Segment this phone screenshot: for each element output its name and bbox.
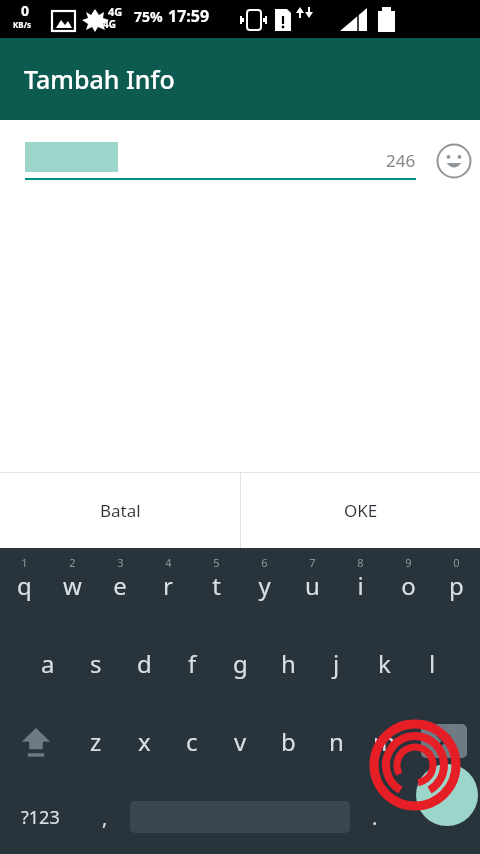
staticText: c [186, 725, 198, 758]
button[interactable]: Batal [0, 473, 240, 548]
staticText: s [90, 647, 102, 680]
button[interactable]: a [24, 624, 72, 702]
staticText: r [163, 569, 173, 602]
staticText: 17:59 [168, 5, 210, 27]
staticText: b [281, 725, 296, 758]
staticText: 75% [134, 7, 163, 26]
staticText: ?123 [21, 805, 60, 830]
button[interactable]: Backspace [408, 702, 480, 780]
staticText: y [258, 569, 271, 602]
staticText: p [449, 569, 464, 602]
button[interactable]: n [312, 702, 360, 780]
button[interactable]: b [264, 702, 312, 780]
staticText: u [305, 569, 320, 602]
staticText: g [233, 647, 248, 680]
staticText: o [401, 569, 416, 602]
button[interactable]: Space [130, 780, 350, 854]
staticText: m [373, 725, 396, 758]
staticText: 4G [108, 4, 123, 19]
button[interactable]: h [264, 624, 312, 702]
button[interactable]: x [120, 702, 168, 780]
staticText: i [357, 569, 364, 602]
button[interactable]: 2 [48, 548, 96, 624]
button[interactable]: m [360, 702, 408, 780]
button[interactable]: Enter [400, 780, 480, 854]
button[interactable]: k [360, 624, 408, 702]
staticText: h [281, 647, 296, 680]
staticText: j [333, 647, 340, 680]
staticText: , [102, 804, 108, 831]
staticText: e [113, 569, 127, 602]
staticText: 0 [21, 1, 30, 20]
button[interactable]: f [168, 624, 216, 702]
staticText: 7 [309, 555, 316, 570]
staticText: k [378, 647, 391, 680]
staticText: 0 [453, 555, 460, 570]
staticText: t [212, 569, 221, 602]
staticText: 9 [405, 555, 412, 570]
staticText: Batal [100, 499, 141, 522]
button[interactable]: 8 [336, 548, 384, 624]
staticText: z [90, 725, 102, 758]
button[interactable]: , [80, 780, 130, 854]
button[interactable]: j [312, 624, 360, 702]
staticText: q [17, 569, 32, 602]
staticText: 6 [261, 555, 268, 570]
button[interactable]: 6 [240, 548, 288, 624]
staticText: x [138, 725, 151, 758]
button[interactable]: 9 [384, 548, 432, 624]
staticText: w [63, 569, 82, 602]
staticText: 3 [117, 555, 124, 570]
button[interactable]: 1 [0, 548, 48, 624]
button[interactable]: s [72, 624, 120, 702]
staticText: . [372, 804, 378, 831]
button[interactable]: OKE [241, 473, 480, 548]
button[interactable]: z [72, 702, 120, 780]
staticText: v [234, 725, 247, 758]
button[interactable]: g [216, 624, 264, 702]
staticText: 4G [103, 17, 116, 31]
button[interactable]: 5 [192, 548, 240, 624]
staticText: n [329, 725, 344, 758]
staticText: d [137, 647, 152, 680]
button[interactable]: Emoji [428, 135, 480, 187]
staticText: 5 [213, 555, 220, 570]
button[interactable]: 246 [25, 142, 416, 180]
staticText: l [429, 647, 436, 680]
button[interactable]: v [216, 702, 264, 780]
staticText: 1 [21, 555, 28, 570]
staticText: 4 [165, 555, 172, 570]
button[interactable]: 3 [96, 548, 144, 624]
button[interactable]: Shift [0, 702, 72, 780]
button[interactable]: l [408, 624, 456, 702]
staticText: 2 [69, 555, 76, 570]
button[interactable]: c [168, 702, 216, 780]
staticText: a [41, 647, 55, 680]
staticText: OKE [344, 499, 378, 522]
button[interactable]: . [350, 780, 400, 854]
staticText: 246 [386, 149, 416, 172]
staticText: KB/s [13, 19, 31, 30]
staticText: f [188, 647, 197, 680]
staticText: 8 [357, 555, 364, 570]
button[interactable]: 0 [432, 548, 480, 624]
button[interactable]: 4 [144, 548, 192, 624]
button[interactable]: ?123 [0, 780, 80, 854]
staticText: Tambah Info [24, 62, 175, 96]
button[interactable]: 7 [288, 548, 336, 624]
button[interactable]: d [120, 624, 168, 702]
